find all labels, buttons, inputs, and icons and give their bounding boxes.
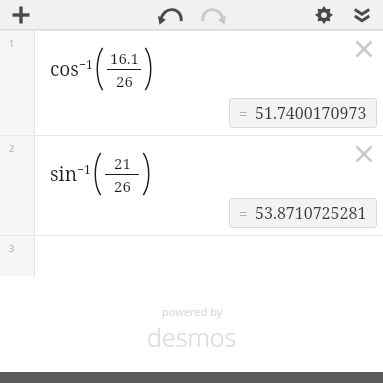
button[interactable]: Undo bbox=[154, 0, 188, 30]
button[interactable]: 3 bbox=[0, 235, 383, 276]
staticText: 1 bbox=[9, 37, 15, 49]
button[interactable]: = bbox=[239, 102, 367, 124]
button[interactable]: 2 bbox=[0, 135, 383, 235]
staticText: 26 bbox=[116, 71, 133, 91]
button[interactable]: Delete expression 1 bbox=[349, 34, 379, 64]
staticText: −1 bbox=[79, 56, 93, 72]
staticText: desmos bbox=[147, 320, 237, 354]
staticText: −1 bbox=[77, 161, 91, 177]
staticText: 51.7400170973 bbox=[255, 102, 367, 124]
staticText: = bbox=[239, 203, 248, 223]
staticText: 26 bbox=[114, 176, 131, 196]
staticText: 21 bbox=[114, 153, 131, 173]
staticText: 16.1 bbox=[110, 48, 139, 68]
button[interactable]: 1 bbox=[0, 30, 383, 135]
staticText: sin bbox=[50, 161, 77, 187]
button[interactable]: Collapse keypad bbox=[347, 0, 377, 30]
button[interactable]: Add expression bbox=[6, 0, 36, 30]
staticText: 2 bbox=[9, 142, 15, 154]
staticText: cos bbox=[50, 56, 79, 82]
button[interactable]: Redo bbox=[196, 0, 230, 30]
button[interactable]: Settings bbox=[309, 0, 339, 30]
staticText: powered by bbox=[162, 304, 223, 319]
staticText: 53.8710725281 bbox=[255, 202, 367, 224]
button[interactable]: Delete expression 2 bbox=[349, 139, 379, 169]
staticText: = bbox=[239, 103, 248, 123]
staticText: 3 bbox=[9, 242, 15, 254]
button[interactable]: = bbox=[239, 202, 367, 224]
